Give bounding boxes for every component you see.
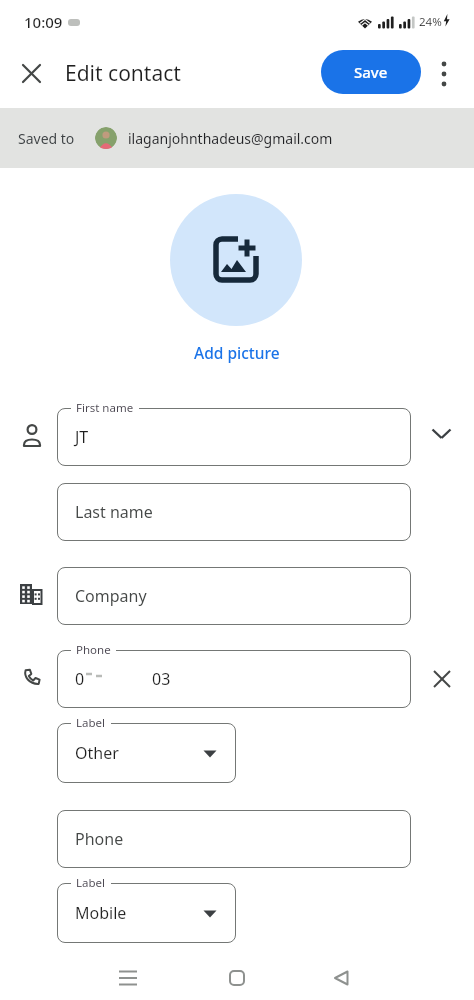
staticText: 0 xyxy=(75,668,85,690)
staticText: 03 xyxy=(152,668,171,690)
button[interactable]: Company xyxy=(57,567,411,625)
button[interactable]: Mobile xyxy=(57,883,236,943)
button[interactable] xyxy=(170,194,302,326)
staticText: ilaganjohnthadeus@gmail.com xyxy=(128,129,333,148)
button[interactable]: JT xyxy=(57,408,411,466)
button[interactable] xyxy=(433,670,451,688)
staticText: Other xyxy=(75,742,119,764)
button[interactable] xyxy=(333,970,349,986)
staticText: Label xyxy=(76,715,106,731)
staticText: 24% xyxy=(419,14,442,30)
button[interactable]: Add picture xyxy=(0,342,474,363)
button[interactable]: Last name xyxy=(57,483,411,541)
staticText: Last name xyxy=(75,501,153,523)
button[interactable] xyxy=(22,64,41,83)
button[interactable] xyxy=(229,970,245,986)
button[interactable]: Save xyxy=(321,50,421,94)
staticText: Save xyxy=(354,62,388,82)
button[interactable] xyxy=(57,650,411,708)
staticText: Add picture xyxy=(194,342,280,363)
staticText: First name xyxy=(76,400,134,416)
staticText: Edit contact xyxy=(65,59,181,88)
button[interactable]: Phone xyxy=(57,810,411,868)
staticText: Label xyxy=(76,875,106,891)
staticText: JT xyxy=(75,426,89,448)
staticText: Mobile xyxy=(75,902,127,924)
staticText: Phone xyxy=(75,828,124,850)
staticText: 10:09 xyxy=(24,12,63,32)
staticText: Phone xyxy=(76,642,111,658)
staticText: Saved to xyxy=(18,129,75,148)
button[interactable] xyxy=(431,428,452,440)
button[interactable] xyxy=(119,970,137,986)
button[interactable]: Other xyxy=(57,723,236,783)
staticText: Company xyxy=(75,585,147,607)
button[interactable] xyxy=(438,61,450,87)
